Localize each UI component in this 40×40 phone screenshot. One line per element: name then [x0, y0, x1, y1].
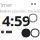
staticText: Timer — [0, 1, 12, 9]
staticText: 4:59 — [2, 11, 30, 30]
staticText: Meditation session remaining — [0, 8, 40, 14]
